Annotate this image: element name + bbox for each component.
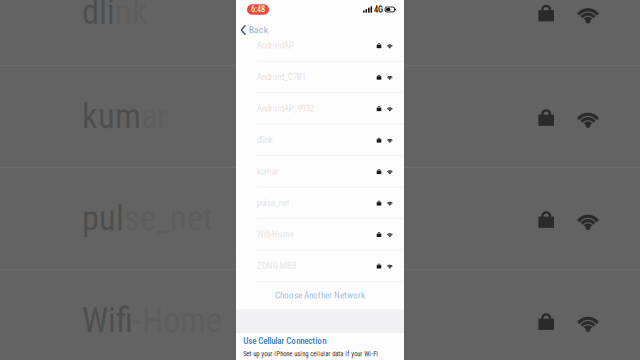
- staticText: 6:48: [251, 5, 265, 14]
- staticText: Set up your iPhone using cellular data i…: [243, 350, 378, 358]
- staticText: kumar: [257, 166, 279, 177]
- button[interactable]: AndroidAP: [236, 30, 404, 61]
- staticText: pul: [82, 198, 124, 239]
- staticText: Use Cellular Connection: [243, 335, 326, 346]
- button[interactable]: pulse_net: [236, 187, 404, 218]
- button[interactable]: ZONG MBB: [236, 250, 404, 281]
- staticText: AndroidAP: [257, 40, 294, 51]
- button[interactable]: Back: [236, 21, 275, 39]
- staticText: ZONG MBB: [257, 260, 297, 271]
- staticText: dli: [82, 0, 115, 32]
- staticText: Android_C7B1: [257, 72, 306, 82]
- button[interactable]: Use Cellular Connection: [236, 333, 326, 349]
- button[interactable]: AndroidAP_9932: [236, 93, 404, 124]
- button[interactable]: Android_C7B1: [236, 61, 404, 92]
- button[interactable]: Wifi-Home: [236, 219, 404, 250]
- staticText: Back: [249, 24, 268, 36]
- staticText: Choose Another Network: [275, 290, 365, 301]
- staticText: Wifi-Home: [257, 229, 294, 239]
- staticText: AndroidAP_9932: [257, 103, 314, 114]
- button[interactable]: kumar: [236, 156, 404, 187]
- button[interactable]: dlink: [236, 124, 404, 155]
- staticText: pulse_net: [257, 197, 290, 208]
- staticText: dlink: [257, 134, 273, 145]
- staticText: kum: [82, 96, 141, 137]
- staticText: Wifi: [82, 300, 133, 341]
- staticText: 4G: [374, 4, 383, 14]
- button[interactable]: Choose Another Network: [236, 282, 404, 309]
